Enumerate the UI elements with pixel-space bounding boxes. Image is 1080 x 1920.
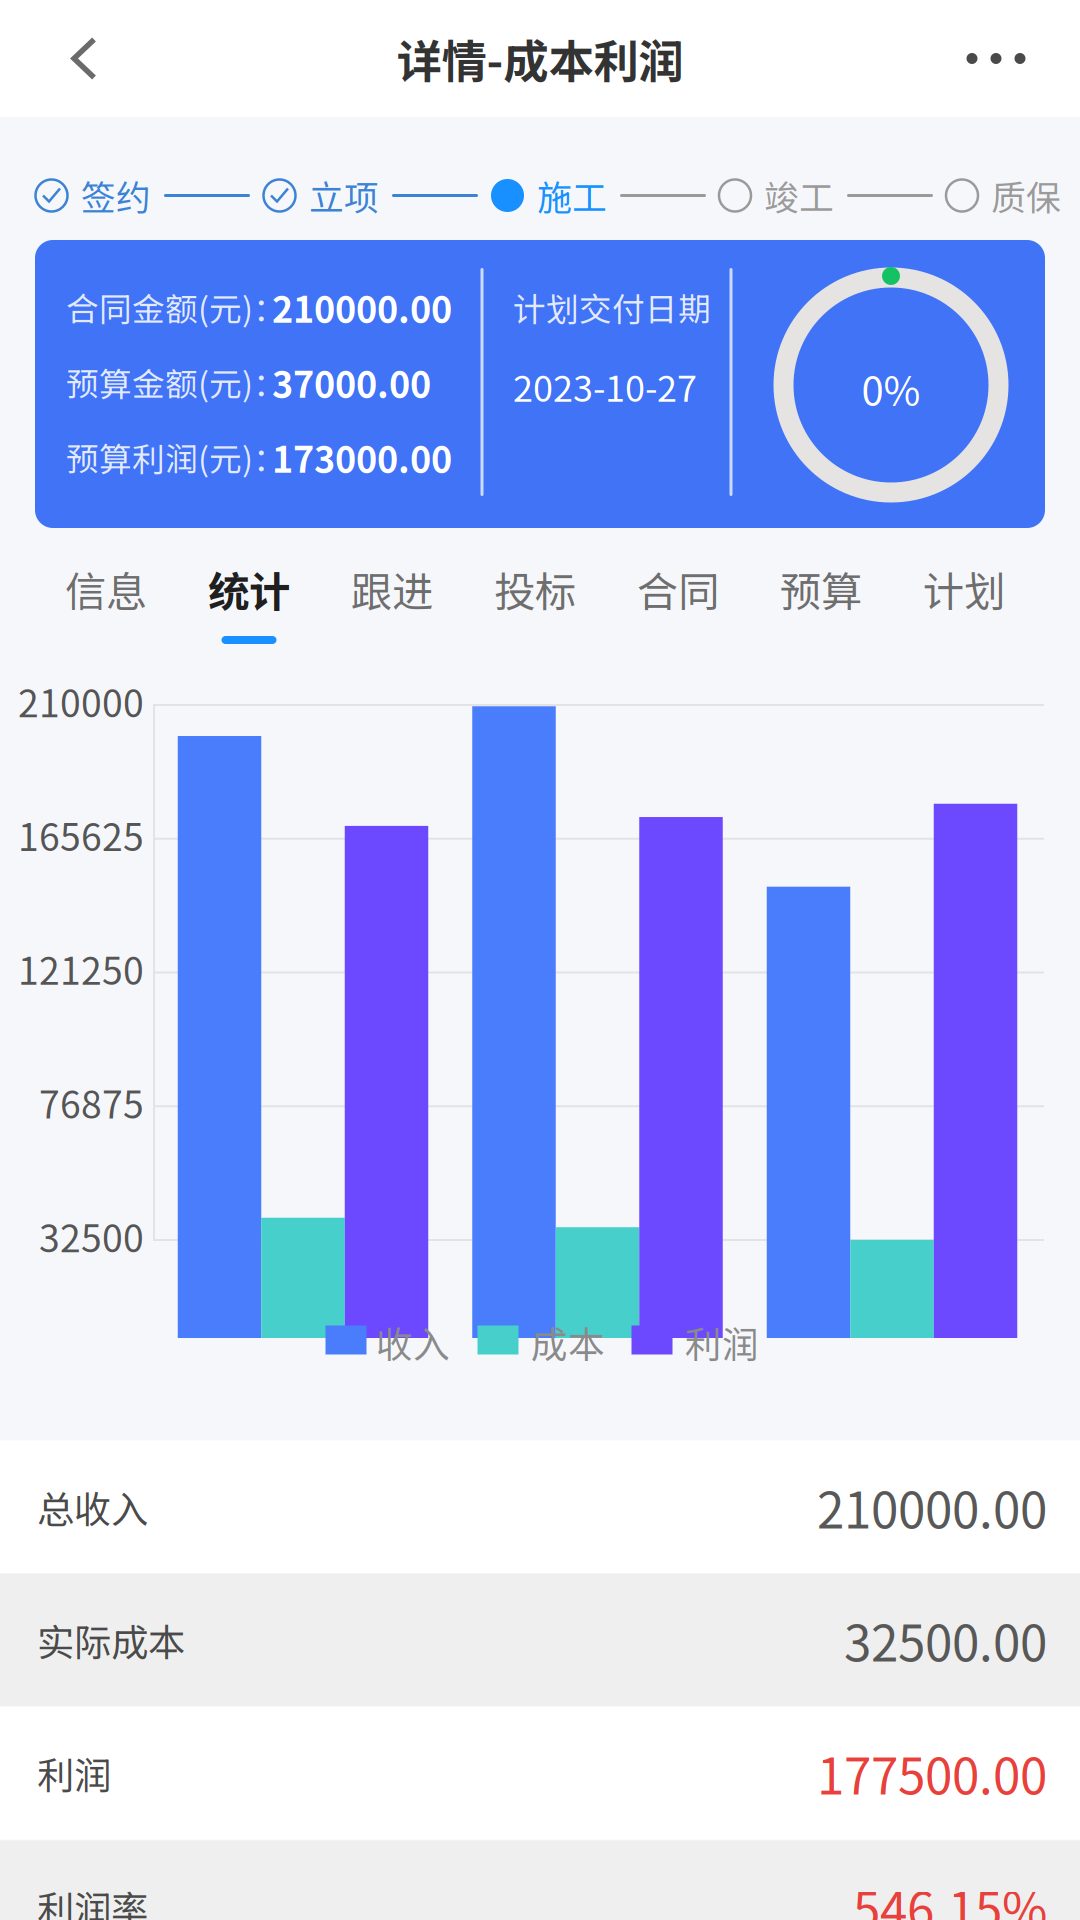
staticText: 利润率 (37, 1880, 148, 1920)
button[interactable]: 合同 (606, 528, 749, 650)
staticText: 施工 (537, 170, 607, 221)
button[interactable]: 实际成本 (0, 1573, 1080, 1706)
staticText: 成本 (531, 1315, 605, 1369)
staticText: 177500.00 (817, 1737, 1047, 1809)
button[interactable]: 返回 (0, 0, 168, 117)
staticText: 32500.00 (844, 1604, 1047, 1676)
staticText: 利润 (37, 1746, 111, 1800)
button[interactable]: 投标 (463, 528, 606, 650)
staticText: 37000.00 (272, 356, 431, 408)
button[interactable]: 统计 (177, 528, 320, 650)
staticText: 165625 (18, 808, 144, 862)
button[interactable]: 跟进 (320, 528, 463, 650)
staticText: 计划交付日期 (513, 283, 711, 331)
staticText: 173000.00 (272, 431, 452, 483)
staticText: 利润 (685, 1315, 759, 1369)
staticText: 信息 (65, 559, 147, 619)
staticText: 预算 (780, 559, 862, 619)
staticText: 32500 (39, 1209, 144, 1263)
staticText: 预算利润(元)： (66, 433, 286, 481)
staticText: 投标 (494, 559, 576, 619)
staticText: 76875 (39, 1075, 144, 1129)
staticText: 预算金额(元)： (66, 358, 286, 406)
staticText: 计划 (923, 559, 1005, 619)
staticText: 签约 (81, 170, 151, 221)
button[interactable]: 利润 (0, 1706, 1080, 1839)
staticText: 总收入 (37, 1480, 148, 1534)
button[interactable]: 信息 (34, 528, 177, 650)
staticText: 546.15% (853, 1871, 1047, 1920)
button[interactable]: 利润率 (0, 1840, 1080, 1920)
staticText: 2023-10-27 (513, 360, 697, 412)
staticText: 统计 (208, 559, 290, 619)
staticText: 质保 (991, 170, 1061, 221)
staticText: 收入 (376, 1315, 450, 1369)
button[interactable]: 计划 (892, 528, 1035, 650)
staticText: 详情-成本利润 (396, 26, 683, 91)
button[interactable]: 更多 (912, 0, 1080, 117)
button[interactable]: 预算 (749, 528, 892, 650)
staticText: 跟进 (351, 559, 433, 619)
staticText: 实际成本 (37, 1613, 185, 1667)
staticText: 121250 (18, 941, 144, 996)
button[interactable]: 总收入 (0, 1440, 1080, 1573)
staticText: 竣工 (764, 170, 834, 221)
staticText: 合同 (637, 559, 719, 619)
staticText: 合同金额(元)： (66, 283, 286, 331)
staticText: 210000.00 (817, 1471, 1047, 1543)
staticText: 立项 (309, 170, 379, 221)
staticText: 0% (861, 359, 920, 417)
staticText: 210000.00 (272, 281, 452, 333)
staticText: 210000 (18, 674, 144, 728)
